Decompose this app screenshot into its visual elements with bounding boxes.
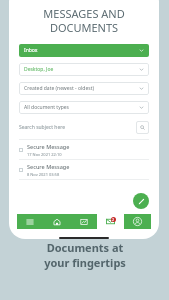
button[interactable]: Secure Message (19, 160, 149, 179)
staticText: Secure Message (27, 163, 70, 170)
button[interactable]: Desktop, Joe (19, 63, 149, 76)
button[interactable]: Created date (newest - oldest) (19, 82, 149, 95)
button[interactable]: Secure Message (19, 140, 149, 159)
staticText: Secure Message (27, 143, 70, 150)
staticText: Inbox (24, 47, 38, 54)
button[interactable]: Inbox (19, 44, 149, 57)
staticText: 17 Nov 2021 22:10 (27, 152, 62, 157)
staticText: Desktop, Joe (24, 66, 54, 73)
staticText: All document types (24, 104, 70, 111)
button[interactable]: All document types (19, 101, 149, 114)
button[interactable]: Messages (97, 214, 124, 229)
button[interactable]: Profile (124, 214, 151, 229)
button[interactable]: Home (43, 214, 70, 229)
button[interactable]: Statistics (70, 214, 97, 229)
button[interactable]: Menu (17, 214, 43, 229)
staticText: MESSAGES AND DOCUMENTS (9, 6, 159, 35)
button[interactable]: Compose (133, 193, 149, 209)
staticText: 8 Nov 2021 03:58 (27, 172, 60, 177)
staticText: Created date (newest - oldest) (24, 85, 94, 92)
button[interactable]: Search subject here (19, 121, 149, 134)
staticText: Search subject here (19, 124, 65, 131)
staticText: 2 (112, 217, 115, 222)
staticText: Documents at your fingertips (44, 240, 126, 270)
